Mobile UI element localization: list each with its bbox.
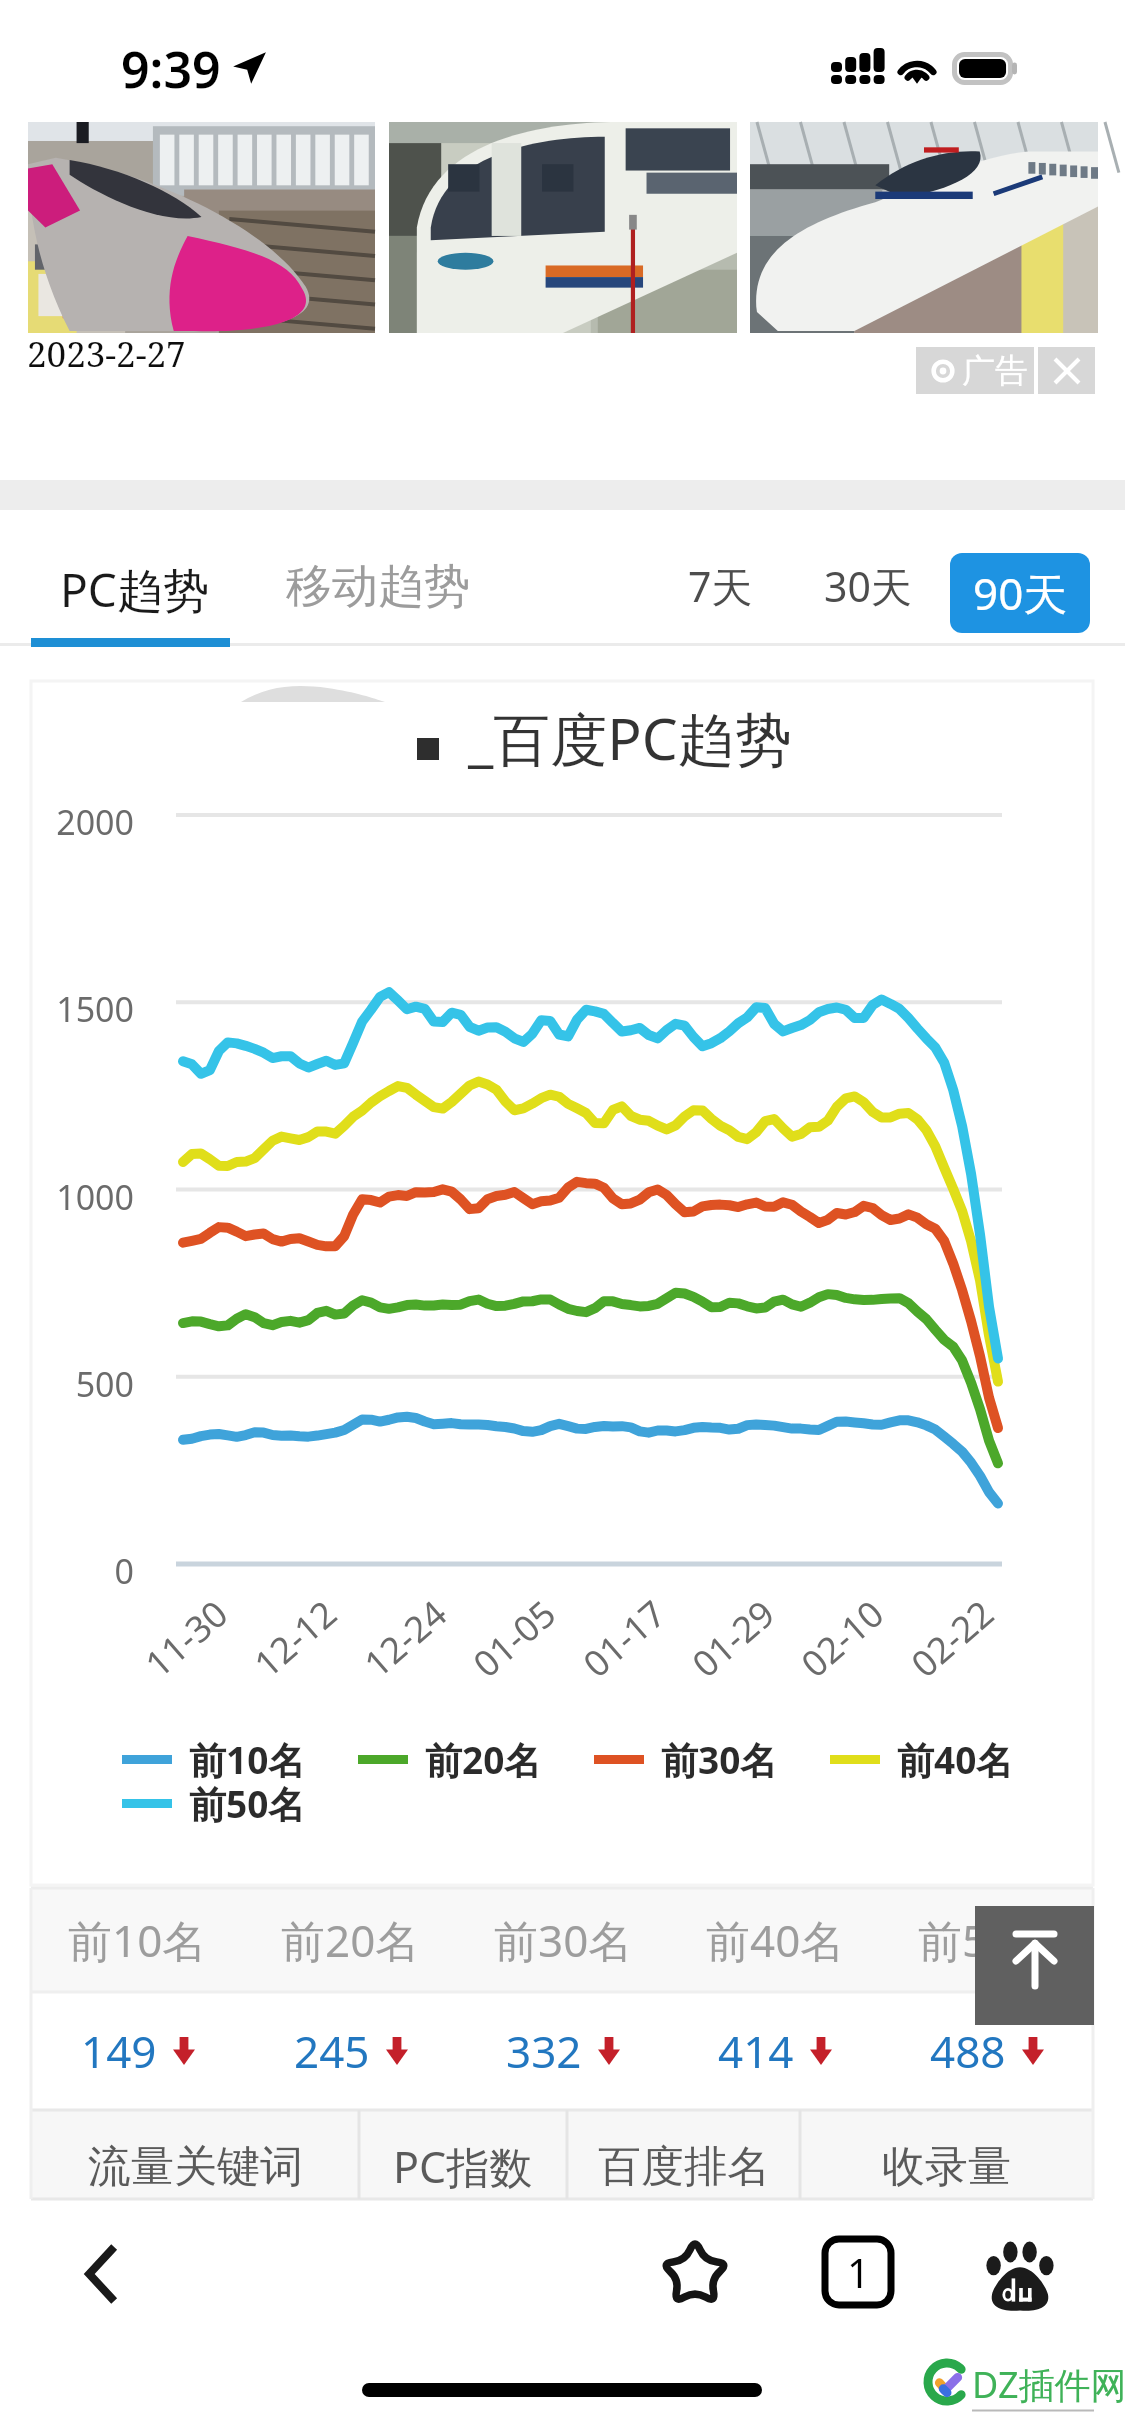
staticText: 前20名 <box>425 1734 542 1785</box>
staticText: 前10名 <box>68 1910 207 1970</box>
staticText: 流量关键词 <box>88 2140 303 2194</box>
staticText: 前50名 <box>918 1910 1057 1970</box>
button[interactable]: PC趋势 <box>30 544 239 635</box>
button[interactable]: PC指数 <box>359 2110 567 2199</box>
staticText: 2023-2-27 <box>27 330 186 378</box>
staticText: 30天 <box>824 558 912 614</box>
staticText: 0 <box>114 1548 134 1594</box>
staticText: DZ插件网 <box>972 2360 1125 2409</box>
staticText: PC趋势 <box>60 558 209 621</box>
staticText: 500 <box>75 1361 134 1407</box>
button[interactable]: 7天 <box>664 542 777 630</box>
staticText: 百度排名 <box>598 2140 770 2194</box>
staticText: 1 <box>847 2245 870 2299</box>
staticText: 前40名 <box>706 1910 845 1970</box>
staticText: 01-17 <box>572 1589 676 1688</box>
staticText: 收录量 <box>882 2140 1011 2194</box>
staticText: 前30名 <box>661 1734 778 1785</box>
staticText: 7天 <box>688 558 753 614</box>
button[interactable]: 移动趋势 <box>256 544 500 630</box>
button[interactable]: 90天 <box>950 553 1090 633</box>
staticText: 01-05 <box>462 1589 566 1688</box>
staticText: 12-24 <box>353 1589 457 1688</box>
staticText: 02-22 <box>900 1589 1004 1688</box>
button[interactable]: Back <box>52 2224 152 2324</box>
staticText: 11-30 <box>134 1589 238 1688</box>
staticText: _百度PC趋势 <box>468 699 792 777</box>
staticText: 广告 <box>962 350 1028 392</box>
staticText: 2000 <box>56 799 134 845</box>
staticText: 414 <box>718 2021 794 2081</box>
staticText: 前10名 <box>189 1734 306 1785</box>
staticText: 90天 <box>973 563 1068 623</box>
staticText: 12-12 <box>243 1589 347 1688</box>
staticText: 前50名 <box>189 1778 306 1829</box>
button[interactable]: 流量关键词 <box>31 2110 359 2199</box>
staticText: 332 <box>506 2021 582 2081</box>
staticText: 149 <box>81 2021 157 2081</box>
staticText: 9:39 <box>121 35 221 103</box>
staticText: 488 <box>930 2021 1006 2081</box>
button[interactable]: 30天 <box>800 542 936 630</box>
button[interactable]: 收录量 <box>800 2110 1093 2199</box>
button[interactable]: Bookmark <box>645 2222 745 2322</box>
button[interactable]: Advertisement <box>916 347 1095 394</box>
button[interactable]: 百度排名 <box>567 2110 800 2199</box>
staticText: 前30名 <box>494 1910 633 1970</box>
button[interactable]: Baidu home <box>970 2222 1070 2322</box>
staticText: 1000 <box>56 1174 134 1220</box>
staticText: 245 <box>294 2021 370 2081</box>
staticText: 前40名 <box>897 1734 1014 1785</box>
staticText: 1500 <box>56 986 134 1032</box>
staticText: 移动趋势 <box>286 558 470 616</box>
button[interactable]: Scroll to top <box>975 1906 1094 2025</box>
staticText: 01-29 <box>681 1589 785 1688</box>
staticText: PC指数 <box>393 2137 533 2196</box>
button[interactable]: Tabs <box>808 2222 908 2322</box>
staticText: 前20名 <box>281 1910 420 1970</box>
staticText: 02-10 <box>790 1589 894 1688</box>
